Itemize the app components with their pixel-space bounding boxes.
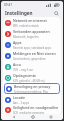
staticText: 62% gebruikt – 48 GB vrij: [13, 79, 45, 83]
button[interactable]: Apps: [3, 39, 61, 50]
button[interactable]: Verbonden apparaten: [3, 28, 61, 39]
staticText: Geschiedenis, gesprekken: [13, 57, 46, 61]
button[interactable]: Netwerk en internet: [3, 17, 61, 28]
staticText: Apps: [13, 40, 22, 45]
staticText: Opslagruimte: [13, 73, 37, 78]
staticText: Instellingen: [5, 10, 33, 16]
button[interactable]: Meldingen en Niet storen: [3, 50, 61, 61]
staticText: Schermvergrendeling, Play: [14, 90, 48, 94]
staticText: SOS, medische gegevens: [13, 111, 45, 114]
staticText: 09:41: [4, 3, 13, 7]
staticText: Aan – 3 apps: [13, 101, 29, 105]
staticText: Meldingen en Niet storen: [13, 51, 56, 56]
staticText: Netwerk en internet: [13, 18, 47, 23]
button[interactable]: Opslagruimte: [3, 72, 61, 83]
staticText: Veiligheid en noodgevallen: [13, 105, 59, 110]
button[interactable]: Terug: [8, 114, 19, 120]
staticText: Beveiliging en privacy: [14, 84, 51, 89]
button[interactable]: Recente apps: [45, 114, 56, 120]
staticText: Recente apps, standaard apps: [13, 46, 51, 50]
button[interactable]: Beveiliging en privacy: [4, 83, 60, 94]
staticText: 75% – nog 6 uur: [13, 68, 34, 72]
staticText: Verbonden apparaten: [13, 29, 50, 34]
staticText: Bluetooth, koppelen: [13, 35, 39, 39]
button[interactable]: Zoeken: [52, 9, 60, 17]
staticText: Accu: [13, 62, 21, 67]
button[interactable]: Accu: [3, 61, 61, 72]
button[interactable]: Startpagina: [27, 114, 38, 120]
staticText: Wifi, mobiel netwerk: [13, 24, 39, 28]
button[interactable]: Veiligheid en noodgevallen: [3, 105, 61, 114]
button[interactable]: Locatie: [3, 94, 61, 105]
staticText: Locatie: [13, 95, 26, 100]
